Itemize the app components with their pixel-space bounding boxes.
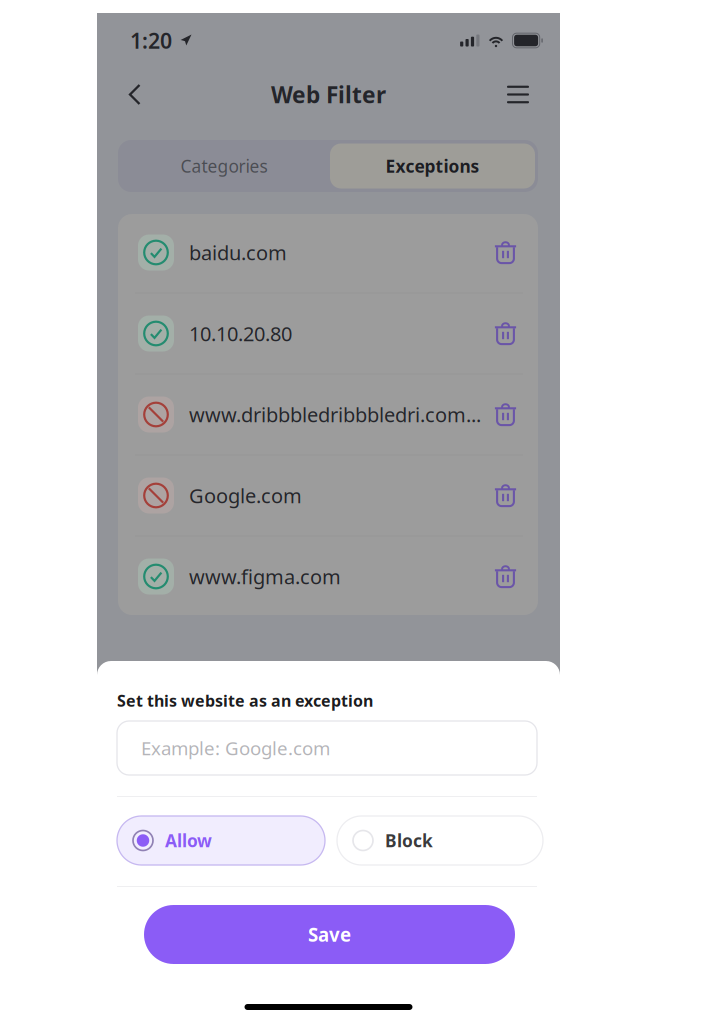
staticText: Exceptions [385, 154, 479, 177]
staticText: www.figma.com [189, 563, 341, 590]
staticText: www.dribbbledribbbledri.com... [189, 401, 481, 428]
button[interactable]: baidu.com [118, 212, 538, 292]
staticText: baidu.com [189, 239, 287, 266]
button[interactable]: Google.com [118, 455, 538, 535]
button[interactable]: 10.10.20.80 [118, 293, 538, 373]
staticText: Categories [180, 154, 267, 177]
staticText: Block [385, 829, 433, 852]
button[interactable]: www.dribbbledribbbledri.com... [118, 374, 538, 454]
button[interactable]: Allow [117, 816, 325, 865]
staticText: 10.10.20.80 [189, 320, 292, 347]
button[interactable]: Block [337, 816, 543, 865]
button[interactable]: Categories [118, 140, 330, 192]
button[interactable]: Back [118, 73, 152, 115]
staticText: 1:20 [130, 26, 172, 55]
button[interactable]: Menu [497, 75, 539, 113]
staticText: Web Filter [271, 79, 386, 109]
button[interactable]: Exceptions [330, 143, 535, 188]
staticText: Example: Google.com [141, 736, 330, 760]
button[interactable]: Save [144, 905, 515, 964]
staticText: Allow [165, 829, 212, 852]
staticText: Save [308, 922, 351, 947]
button[interactable]: www.figma.com [118, 536, 538, 616]
staticText: Set this website as an exception [117, 690, 373, 711]
staticText: Google.com [189, 482, 302, 509]
